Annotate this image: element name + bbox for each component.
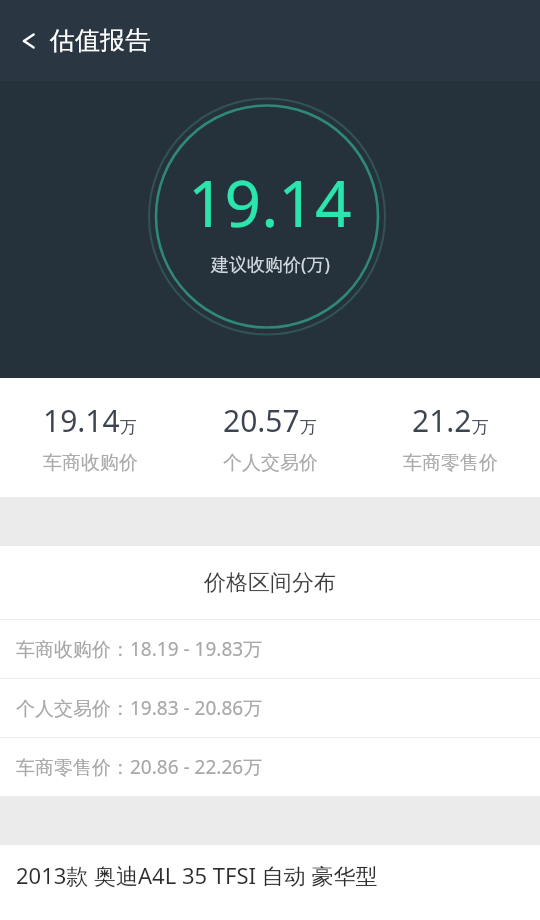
staticText: 20.57 [223, 400, 300, 441]
button[interactable]: Back [0, 0, 170, 81]
staticText: 建议收购价(万) [211, 252, 330, 277]
button[interactable]: 20.57 [180, 400, 360, 475]
staticText: 估值报告 [50, 25, 150, 56]
button[interactable]: 19.14 [0, 400, 180, 475]
staticText: 万 [472, 417, 489, 438]
staticText: 车商零售价：20.86 - 22.26万 [16, 754, 263, 780]
button[interactable]: 车商零售价：20.86 - 22.26万 [0, 738, 540, 796]
staticText: 车商收购价 [43, 451, 138, 475]
staticText: 个人交易价：19.83 - 20.86万 [16, 695, 263, 721]
button[interactable]: 2013款 奥迪A4L 35 TFSI 自动 豪华型 [0, 845, 540, 905]
staticText: 万 [300, 417, 317, 438]
other: Back [20, 30, 42, 52]
staticText: 车商收购价：18.19 - 19.83万 [16, 636, 263, 662]
button[interactable]: 21.2 [360, 400, 540, 475]
button[interactable]: 个人交易价：19.83 - 20.86万 [0, 679, 540, 737]
staticText: 21.2 [412, 400, 472, 441]
staticText: 价格区间分布 [204, 569, 336, 597]
staticText: 19.14 [43, 400, 120, 441]
staticText: 万 [120, 417, 137, 438]
button[interactable]: 车商收购价：18.19 - 19.83万 [0, 620, 540, 678]
staticText: 个人交易价 [223, 451, 318, 475]
staticText: 19.14 [188, 159, 352, 246]
staticText: 车商零售价 [403, 451, 498, 475]
staticText: 2013款 奥迪A4L 35 TFSI 自动 豪华型 [16, 860, 378, 890]
